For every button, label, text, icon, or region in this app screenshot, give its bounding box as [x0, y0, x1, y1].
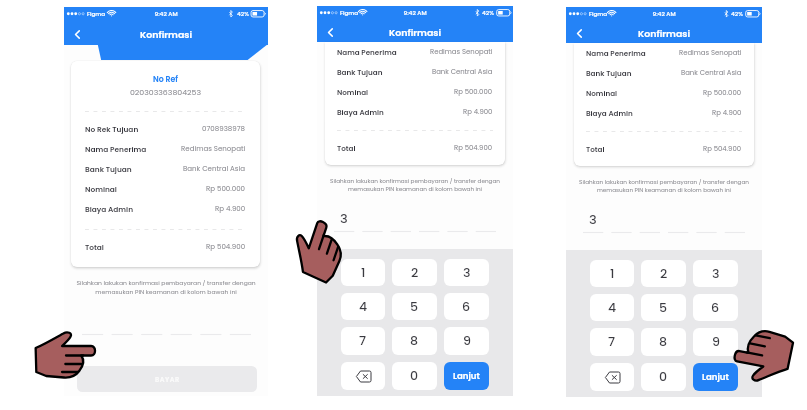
staticText: Silahkan lakukan konfirmasi pembayaran /… [69, 279, 263, 296]
staticText: 4 [608, 299, 617, 317]
button[interactable]: Backspace [590, 363, 634, 391]
staticText: Nominal [85, 184, 117, 194]
staticText: Figma [589, 10, 608, 18]
button[interactable]: Back [322, 24, 338, 40]
button[interactable]: 9 [693, 328, 738, 356]
staticText: 7 [359, 332, 367, 350]
staticText: Silahkan lakukan konfirmasi pembayaran /… [570, 178, 758, 194]
button[interactable]: Lanjut [693, 363, 738, 391]
button[interactable]: 2 [392, 259, 437, 286]
staticText: 1 [610, 265, 615, 283]
staticText: Biaya Admin [337, 107, 384, 117]
staticText: Lanjut [702, 371, 729, 383]
staticText: 9:42 AM [317, 9, 513, 17]
staticText: Total [586, 144, 605, 154]
staticText: No Ref [85, 74, 246, 85]
staticText: Bank Central Asia [183, 164, 246, 174]
button[interactable]: 5 [392, 293, 437, 320]
staticText: 9 [712, 333, 720, 351]
staticText: 020303363804253 [85, 87, 246, 98]
staticText: Nama Penerima [586, 48, 646, 58]
button[interactable]: 7 [341, 327, 385, 355]
staticText: Rp 4.900 [712, 108, 742, 118]
staticText: Redimas Senopati [181, 144, 246, 154]
staticText: 9:42 AM [64, 10, 268, 18]
staticText: Rp 504.900 [454, 143, 493, 153]
staticText: 7 [608, 333, 616, 351]
staticText: Silahkan lakukan konfirmasi pembayaran /… [321, 177, 509, 193]
staticText: 2 [660, 265, 668, 283]
button[interactable]: Lanjut [444, 362, 489, 390]
staticText: Nominal [337, 87, 369, 97]
staticText: 42% [731, 10, 743, 18]
button[interactable]: 4 [341, 293, 385, 320]
staticText: Nama Penerima [337, 47, 397, 57]
button[interactable]: 5 [641, 294, 686, 321]
staticText: 2 [411, 264, 419, 282]
button[interactable]: 4 [590, 294, 634, 321]
button[interactable]: 0 [392, 362, 437, 390]
staticText: Biaya Admin [586, 108, 633, 118]
staticText: Total [337, 143, 356, 153]
button[interactable]: 0 [641, 363, 686, 391]
staticText: 6 [462, 298, 471, 316]
button[interactable]: 3 [693, 260, 738, 287]
button[interactable]: Backspace [341, 362, 385, 390]
button[interactable]: 6 [444, 293, 489, 320]
staticText: Konfirmasi [638, 27, 691, 40]
button[interactable]: 8 [641, 328, 686, 356]
staticText: 5 [410, 298, 419, 316]
staticText: 8 [659, 333, 668, 351]
staticText: 3 [463, 264, 471, 282]
staticText: 3 [589, 210, 597, 228]
staticText: Nominal [586, 88, 618, 98]
staticText: Rp 504.900 [206, 242, 246, 252]
button[interactable]: 9 [444, 327, 489, 355]
button[interactable]: 1 [341, 259, 385, 286]
staticText: Konfirmasi [140, 28, 193, 41]
staticText: Lanjut [453, 370, 480, 382]
staticText: 4 [359, 298, 368, 316]
staticText: Rp 4.900 [215, 204, 246, 214]
staticText: Figma [87, 10, 106, 18]
staticText: Figma [340, 9, 359, 17]
staticText: 6 [711, 299, 720, 317]
staticText: Rp 504.900 [703, 144, 742, 154]
staticText: 1 [361, 264, 366, 282]
staticText: 5 [659, 299, 668, 317]
staticText: 8 [410, 332, 419, 350]
staticText: 9:42 AM [566, 10, 762, 18]
staticText: Total [85, 242, 104, 252]
staticText: 42% [482, 9, 494, 17]
staticText: Redimas Senopati [679, 48, 742, 58]
staticText: Bank Tujuan [586, 68, 632, 78]
staticText: Rp 4.900 [463, 107, 493, 117]
staticText: Rp 500.000 [206, 184, 246, 194]
button[interactable]: 2 [641, 260, 686, 287]
staticText: 0 [659, 368, 668, 386]
staticText: Redimas Senopati [430, 47, 493, 57]
staticText: Bank Tujuan [337, 67, 383, 77]
button[interactable]: 6 [693, 294, 738, 321]
staticText: Biaya Admin [85, 204, 134, 214]
button[interactable]: 1 [590, 260, 634, 287]
staticText: Konfirmasi [389, 26, 442, 39]
staticText: Bank Tujuan [85, 164, 132, 174]
button[interactable]: BAYAR [77, 366, 257, 392]
staticText: 3 [340, 209, 348, 227]
staticText: 0 [410, 367, 419, 385]
staticText: 3 [712, 265, 720, 283]
button[interactable]: Back [571, 25, 587, 41]
button[interactable]: 3 [444, 259, 489, 286]
staticText: BAYAR [155, 375, 180, 384]
button[interactable]: Back [69, 26, 85, 42]
staticText: 42% [237, 10, 249, 18]
button[interactable]: 7 [590, 328, 634, 356]
button[interactable]: 8 [392, 327, 437, 355]
staticText: 9 [463, 332, 471, 350]
staticText: Bank Central Asia [681, 68, 742, 78]
staticText: No Rek Tujuan [85, 124, 139, 134]
staticText: Nama Penerima [85, 144, 147, 154]
staticText: Rp 500.000 [454, 87, 493, 97]
staticText: Bank Central Asia [432, 67, 493, 77]
